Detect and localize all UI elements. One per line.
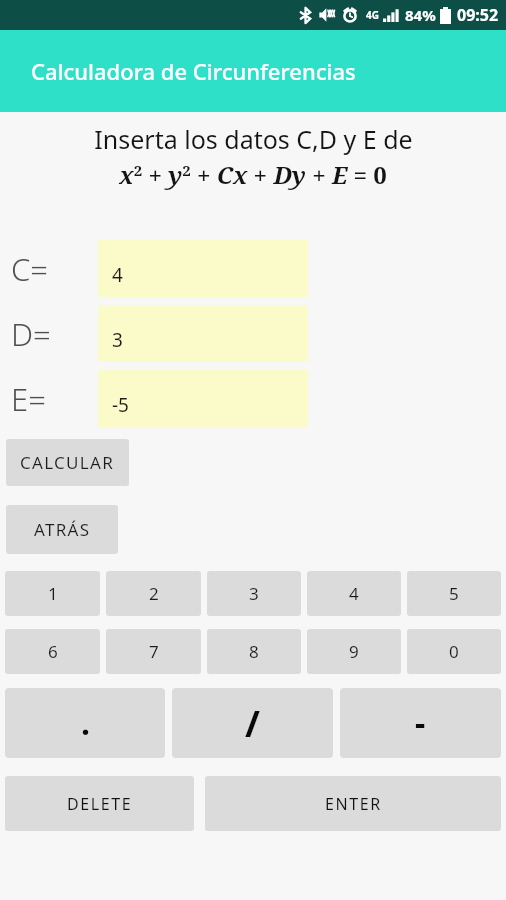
- button[interactable]: 8: [207, 629, 301, 674]
- button[interactable]: DELETE: [5, 776, 194, 831]
- staticText: 84%: [405, 5, 436, 25]
- staticText: 4: [349, 582, 359, 605]
- button[interactable]: 2: [106, 571, 201, 616]
- button[interactable]: 9: [307, 629, 401, 674]
- staticText: D=: [11, 313, 51, 355]
- staticText: 1: [48, 582, 58, 605]
- button[interactable]: 7: [106, 629, 201, 674]
- button[interactable]: 3: [207, 571, 301, 616]
- button[interactable]: ENTER: [205, 776, 501, 831]
- button[interactable]: CALCULAR: [6, 439, 129, 486]
- staticText: DELETE: [67, 793, 133, 815]
- button[interactable]: -5: [98, 370, 308, 427]
- staticText: 7: [149, 640, 159, 663]
- staticText: ENTER: [325, 793, 382, 815]
- staticText: .: [81, 701, 90, 745]
- staticText: 5: [449, 582, 459, 605]
- button[interactable]: 0: [407, 629, 501, 674]
- button[interactable]: Decimal point: [5, 688, 165, 758]
- button[interactable]: 6: [5, 629, 100, 674]
- staticText: ATRÁS: [34, 518, 91, 541]
- button[interactable]: 4: [307, 571, 401, 616]
- staticText: CALCULAR: [20, 451, 115, 474]
- button[interactable]: 1: [5, 571, 100, 616]
- staticText: 9: [349, 640, 359, 663]
- staticText: 8: [249, 640, 259, 663]
- staticText: 0: [449, 640, 459, 663]
- staticText: 2: [149, 582, 159, 605]
- staticText: -: [415, 701, 426, 745]
- staticText: x2 + y2 + Cx + Dy + E = 0: [119, 158, 387, 191]
- button[interactable]: 3: [98, 305, 308, 362]
- button[interactable]: Divide: [172, 688, 333, 758]
- staticText: 4G: [366, 8, 379, 22]
- staticText: C=: [11, 248, 49, 290]
- staticText: -5: [112, 392, 129, 418]
- staticText: /: [245, 699, 260, 748]
- staticText: 3: [112, 327, 123, 353]
- other: Bluetooth: [299, 7, 312, 24]
- staticText: E=: [11, 378, 46, 420]
- button[interactable]: 5: [407, 571, 501, 616]
- staticText: Inserta los datos C,D y E de: [94, 122, 413, 156]
- button[interactable]: 4: [98, 240, 308, 297]
- staticText: Calculadora de Circunferencias: [31, 56, 356, 86]
- button[interactable]: Minus: [340, 688, 501, 758]
- button[interactable]: ATRÁS: [6, 505, 118, 554]
- staticText: 09:52: [457, 4, 499, 26]
- staticText: 4: [112, 262, 123, 288]
- staticText: 6: [48, 640, 58, 663]
- staticText: 3: [249, 582, 259, 605]
